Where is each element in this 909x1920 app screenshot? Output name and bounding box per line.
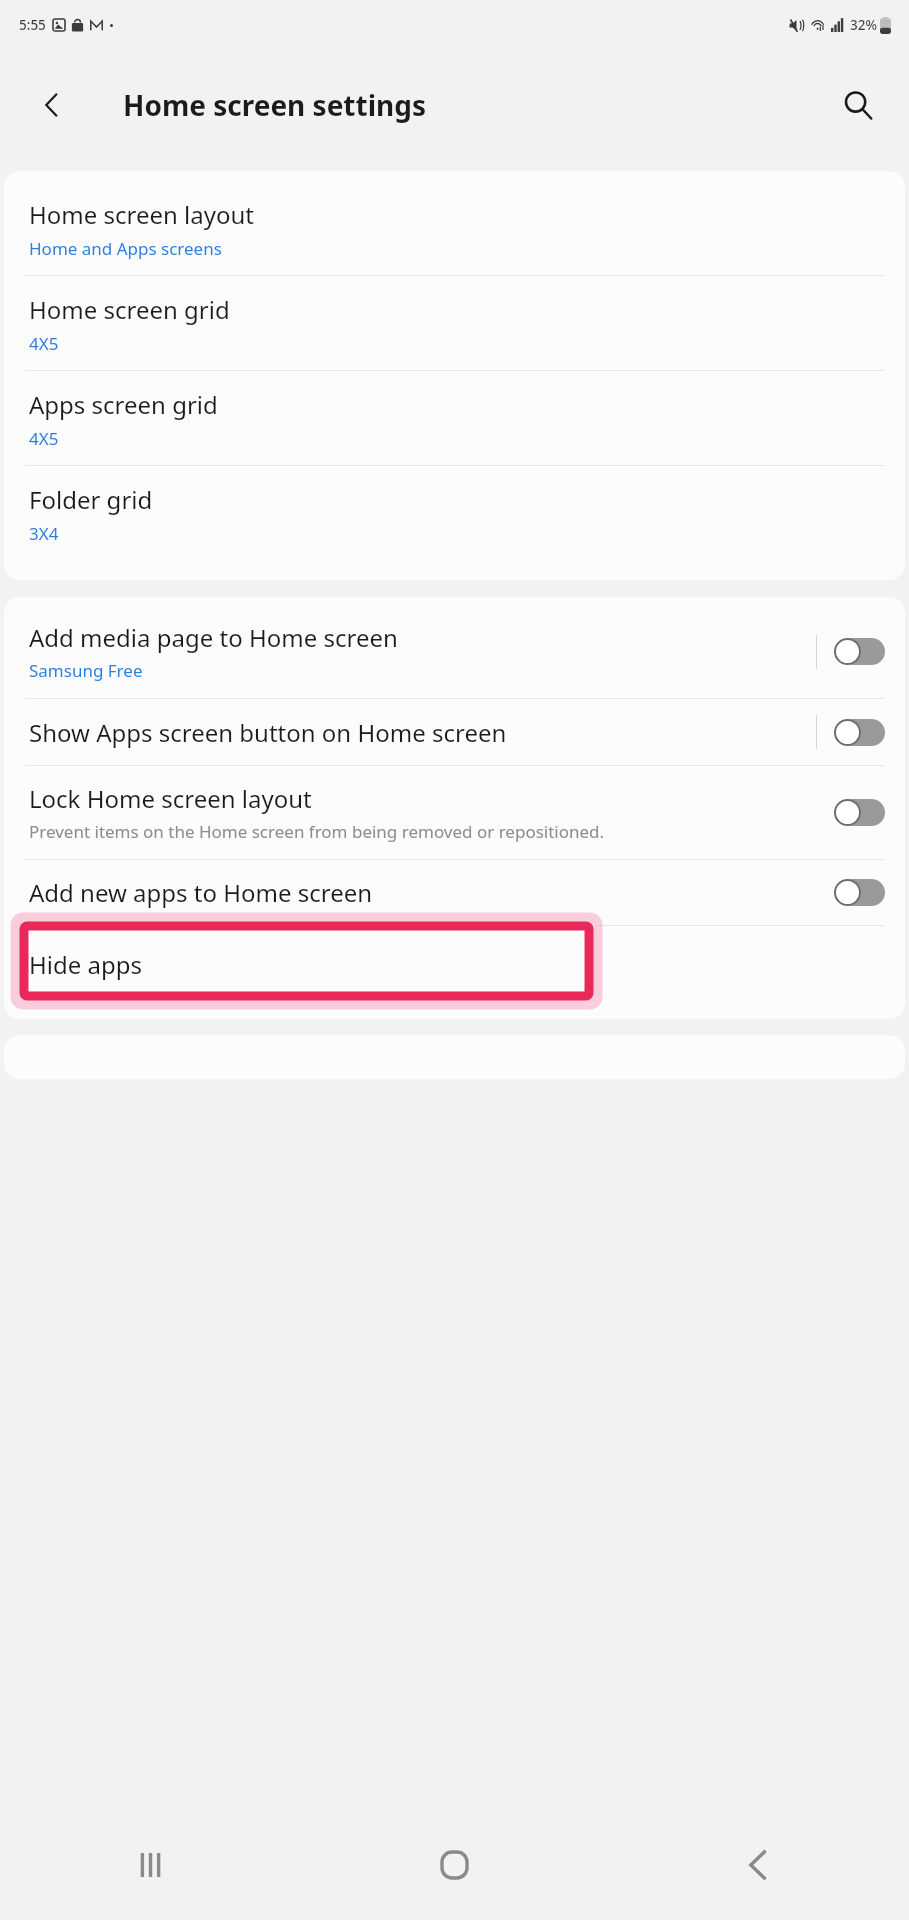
button[interactable]: Apps screen grid xyxy=(4,371,905,465)
button[interactable]: Toggle xyxy=(833,879,885,906)
staticText: Show Apps screen button on Home screen xyxy=(29,716,507,749)
button[interactable]: Add new apps to Home screen xyxy=(4,860,905,925)
button[interactable]: Lock Home screen layout xyxy=(4,766,905,859)
button[interactable]: Toggle xyxy=(833,719,885,746)
button[interactable]: Home screen grid xyxy=(4,276,905,370)
staticText: Lock Home screen layout xyxy=(29,782,312,815)
staticText: Apps screen grid xyxy=(29,388,218,421)
staticText: Home screen layout xyxy=(29,198,255,231)
staticText: Home screen settings xyxy=(123,86,426,124)
staticText: 4X5 xyxy=(29,427,59,450)
staticText: Home and Apps screens xyxy=(29,237,222,260)
button[interactable]: Toggle xyxy=(833,799,885,826)
button[interactable]: Toggle xyxy=(833,638,885,665)
staticText: 32% xyxy=(850,16,877,34)
staticText: Samsung Free xyxy=(29,659,143,682)
button[interactable]: Home screen layout xyxy=(4,181,905,275)
staticText: 4X5 xyxy=(29,332,59,355)
button[interactable]: Home xyxy=(303,1810,606,1920)
button[interactable]: Folder grid xyxy=(4,466,905,560)
button[interactable]: Hide apps xyxy=(4,926,905,1003)
staticText: 3X4 xyxy=(29,522,59,545)
button[interactable]: Recent apps xyxy=(0,1810,303,1920)
staticText: Home screen grid xyxy=(29,293,230,326)
staticText: Folder grid xyxy=(29,483,153,516)
staticText: Add media page to Home screen xyxy=(29,621,398,654)
button[interactable]: Add media page to Home screen xyxy=(4,605,905,698)
staticText: Hide apps xyxy=(29,948,142,981)
staticText: Add new apps to Home screen xyxy=(29,876,373,909)
staticText: 5:55 xyxy=(19,16,46,34)
button[interactable]: Back xyxy=(24,77,80,133)
button[interactable]: Back xyxy=(606,1810,909,1920)
button[interactable]: Search xyxy=(829,76,887,134)
staticText: Prevent items on the Home screen from be… xyxy=(29,820,605,843)
button[interactable]: Show Apps screen button on Home screen xyxy=(4,699,905,765)
